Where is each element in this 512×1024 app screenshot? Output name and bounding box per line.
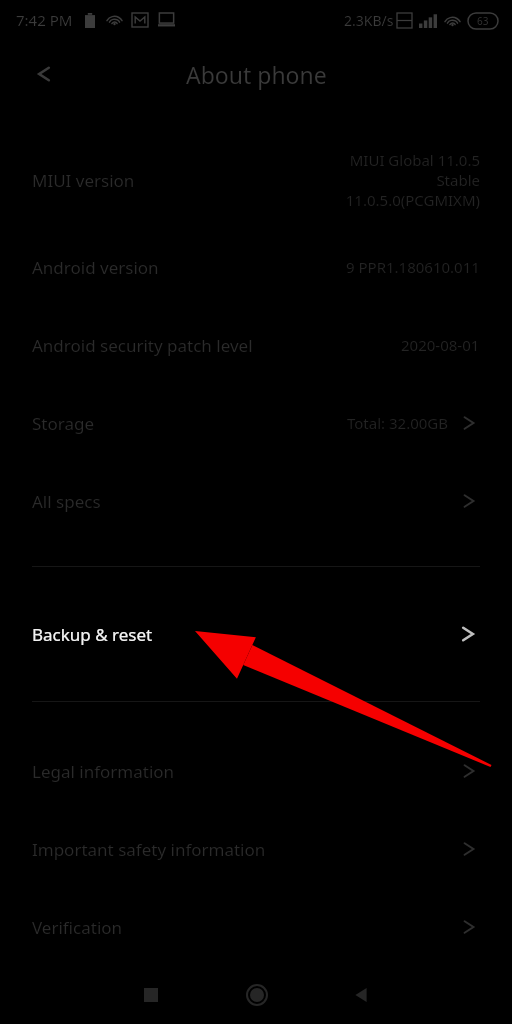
staticText: 2.3KB/s [344,11,394,30]
button[interactable]: Backup & reset [0,567,512,701]
staticText: 11.0.5.0(PCGMIXM) [345,190,480,210]
button[interactable]: Important safety information [0,810,512,888]
staticText: All specs [32,490,101,513]
staticText: Important safety information [32,838,266,861]
button[interactable]: Android security patch level [0,306,512,384]
button[interactable]: MIUI version [0,132,512,228]
button[interactable]: Android version [0,228,512,306]
staticText: Backup & reset [32,623,153,646]
staticText: Stable [436,170,480,190]
staticText: Total: 32.00GB [347,413,448,433]
button[interactable]: Storage [0,384,512,462]
button[interactable]: Recents [121,966,181,1024]
staticText: 2020-08-01 [401,335,480,355]
button[interactable]: Verification [0,888,512,966]
staticText: MIUI Global 11.0.5 [349,150,480,170]
button[interactable]: Back [22,52,66,96]
staticText: MIUI version [32,169,135,192]
staticText: Android version [32,256,159,279]
staticText: 9 PPR1.180610.011 [346,257,480,277]
staticText: 7:42 PM [16,10,73,30]
staticText: Verification [32,916,123,939]
staticText: Legal information [32,760,175,783]
button[interactable]: Back [331,966,391,1024]
button[interactable]: Home [227,966,287,1024]
staticText: Android security patch level [32,334,253,357]
staticText: Storage [32,412,95,435]
staticText: About phone [186,59,327,90]
button[interactable]: Legal information [0,732,512,810]
staticText: 63 [477,14,489,28]
